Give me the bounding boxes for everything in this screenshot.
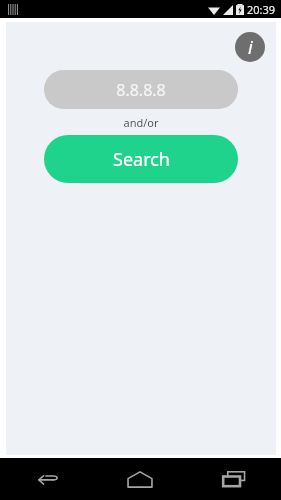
staticText: and/or <box>123 115 159 130</box>
staticText: Search <box>113 147 170 172</box>
staticText: 8.8.8.8 <box>116 79 166 101</box>
staticText: i <box>248 35 253 60</box>
button[interactable]: 8.8.8.8 <box>44 70 238 109</box>
button[interactable]: Recent apps <box>187 458 281 500</box>
button[interactable]: Back <box>0 458 93 500</box>
button[interactable]: Home <box>93 458 187 500</box>
button[interactable]: Info <box>235 32 265 62</box>
staticText: 20:39 <box>247 2 276 17</box>
button[interactable]: Search <box>44 135 238 183</box>
